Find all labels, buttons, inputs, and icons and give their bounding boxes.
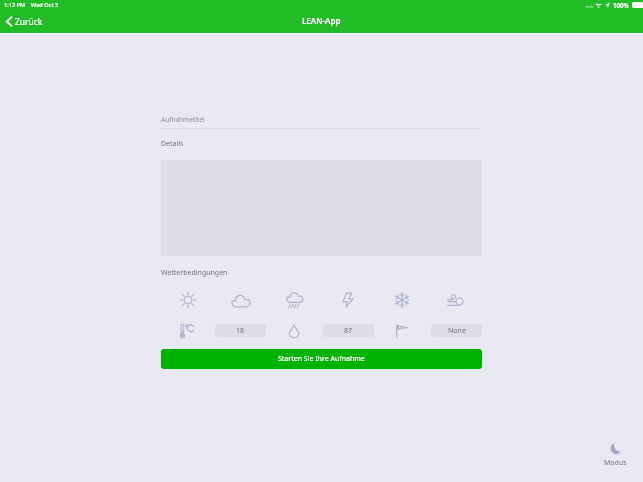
other: Wind xyxy=(395,324,410,338)
staticText: Details xyxy=(161,139,184,149)
button[interactable]: Cloudy xyxy=(228,287,254,313)
staticText: None xyxy=(448,326,466,336)
staticText: Starten Sie Ihre Aufnahme xyxy=(278,354,365,364)
button[interactable]: Thunderstorm xyxy=(335,287,361,313)
staticText: 100% xyxy=(613,1,630,9)
other: Humidity xyxy=(289,324,299,338)
button[interactable]: 87 xyxy=(323,324,374,337)
staticText: Aufnahmetitel xyxy=(161,115,205,124)
button[interactable]: Snow xyxy=(389,287,415,313)
button[interactable]: Zurück xyxy=(3,14,46,29)
staticText: Zurück xyxy=(15,16,43,27)
staticText: 1:12 PM xyxy=(4,1,26,9)
button[interactable]: 18 xyxy=(215,324,266,337)
staticText: Wetterbedingungen xyxy=(161,268,228,278)
button[interactable]: Rainy xyxy=(282,287,308,313)
staticText: 18 xyxy=(236,326,245,336)
button[interactable]: Sunny xyxy=(175,287,201,313)
button[interactable]: None xyxy=(431,324,482,337)
button[interactable]: Windy xyxy=(442,287,468,313)
other: Temperature xyxy=(179,323,196,339)
button[interactable]: Modus xyxy=(598,439,632,469)
staticText: Modus xyxy=(604,458,627,468)
staticText: Wed Oct 3 xyxy=(31,1,59,9)
staticText: 87 xyxy=(344,326,353,336)
button[interactable]: Starten Sie Ihre Aufnahme xyxy=(161,349,482,369)
staticText: LEAN-App xyxy=(302,15,341,26)
